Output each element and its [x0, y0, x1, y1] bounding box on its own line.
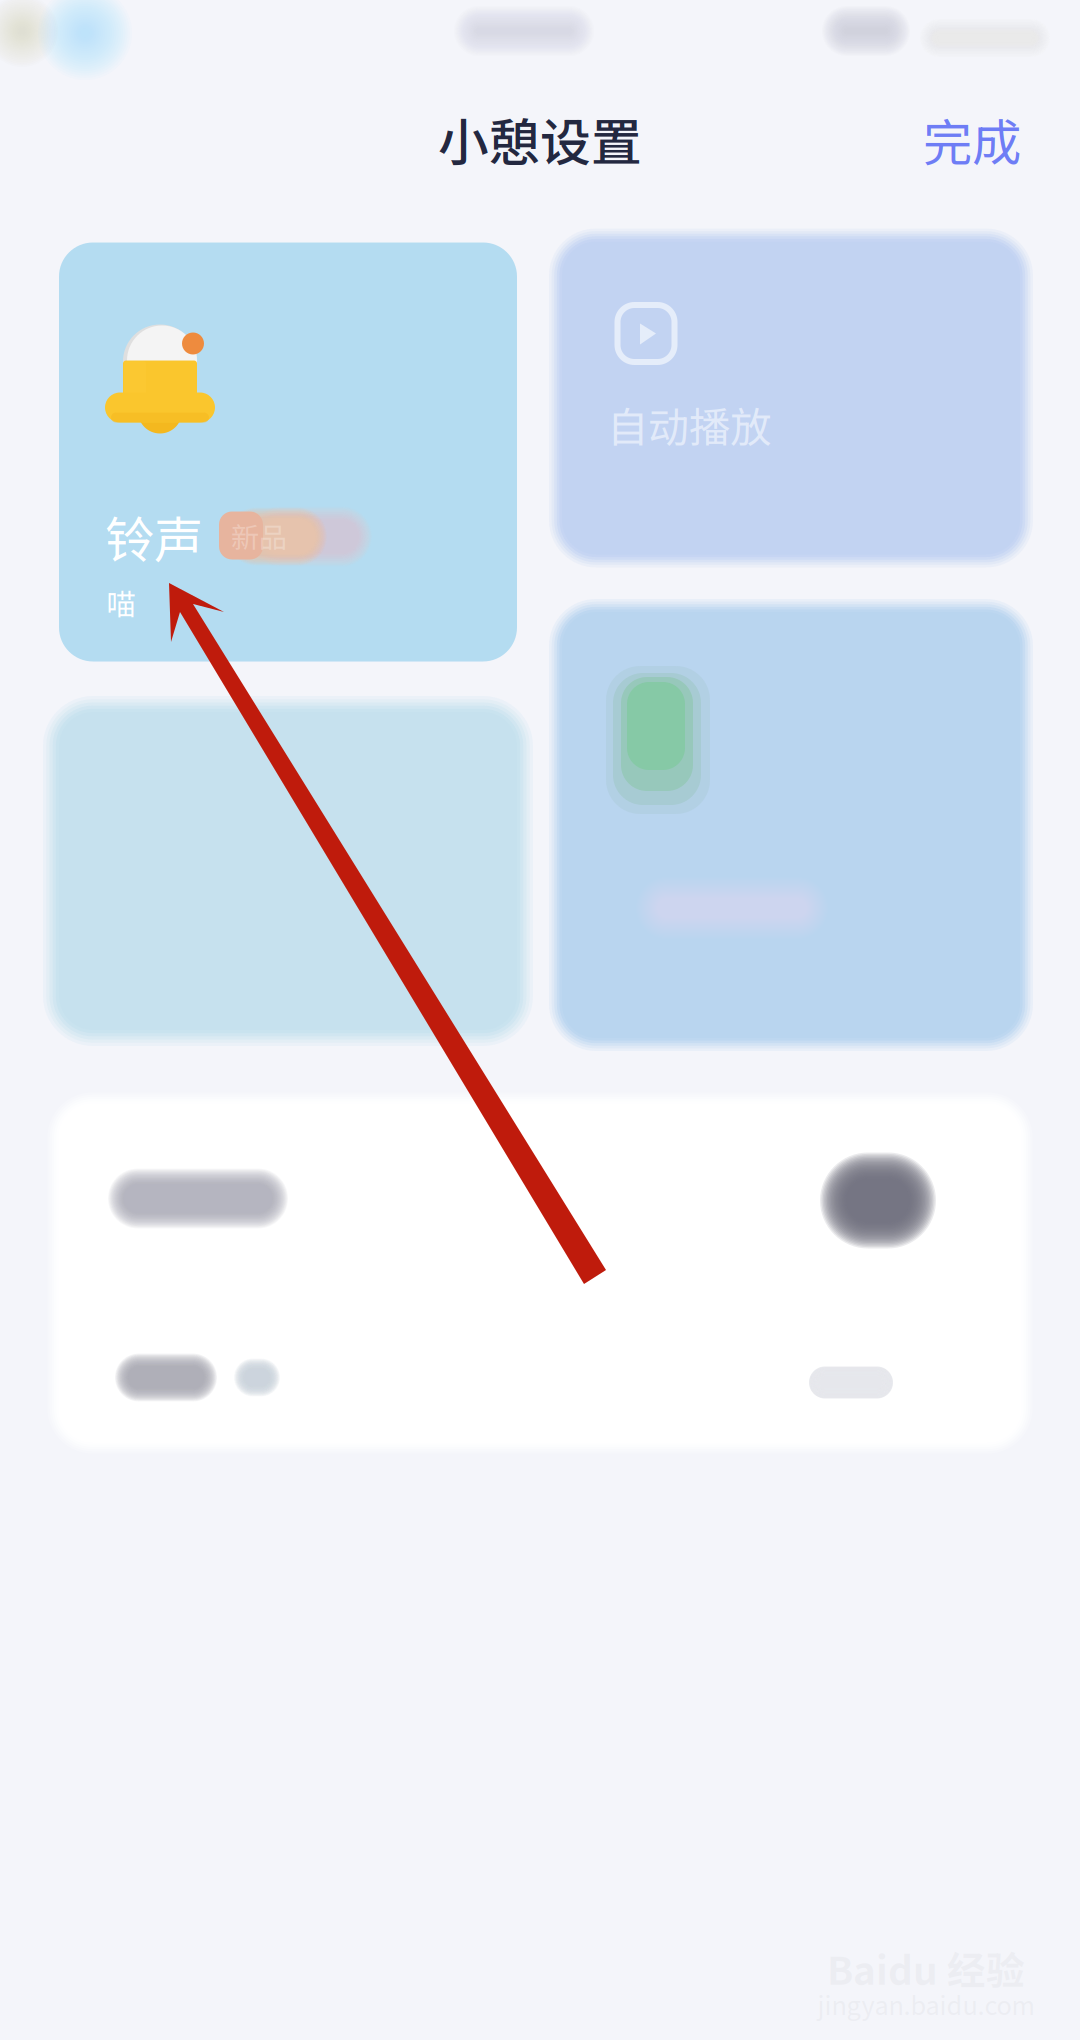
button[interactable] [59, 712, 517, 1030]
button[interactable]: 自动播放 [562, 241, 1020, 554]
staticText: 自动播放 [607, 395, 771, 454]
staticText: 完成 [923, 103, 1021, 175]
staticText: 小憩设置 [438, 102, 642, 176]
staticText: 新品 [231, 515, 287, 556]
staticText: Baidu 经验 [827, 1940, 1025, 1996]
staticText: 喵 [106, 581, 135, 624]
staticText: 铃声 [105, 501, 203, 572]
button[interactable]: 铃声 [59, 242, 517, 661]
button[interactable] [58, 1272, 1021, 1442]
button[interactable] [58, 1103, 1021, 1273]
button[interactable]: 完成 [897, 93, 1047, 185]
button[interactable] [562, 612, 1020, 1038]
